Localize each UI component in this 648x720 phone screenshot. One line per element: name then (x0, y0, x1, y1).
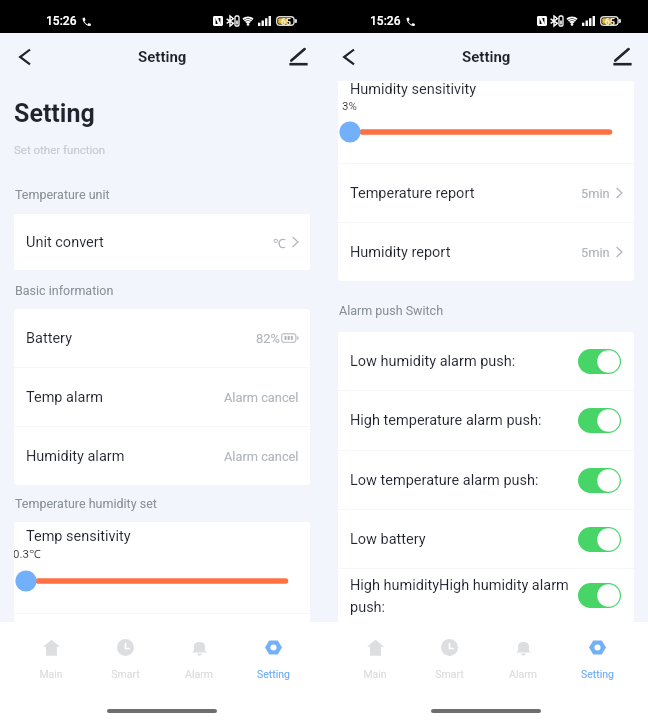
button[interactable]: Toggle (578, 583, 621, 608)
button[interactable]: Back (4, 37, 44, 77)
button[interactable]: Toggle (578, 408, 621, 433)
button[interactable]: Low battery (338, 510, 634, 568)
button[interactable]: Unit convert (14, 214, 310, 270)
staticText: Temp sensitivity (26, 528, 131, 545)
button[interactable]: Toggle (578, 468, 621, 493)
staticText: Low temperature alarm push: (350, 472, 570, 489)
staticText: Alarm (185, 668, 213, 680)
button[interactable]: Alarm (162, 622, 236, 692)
staticText: Smart (111, 668, 140, 680)
button[interactable]: Battery (14, 309, 310, 367)
button[interactable]: Temp alarm (14, 368, 310, 426)
staticText: 3% (342, 99, 357, 112)
staticText: Battery (26, 330, 72, 347)
button[interactable]: Setting (560, 622, 634, 692)
staticText: Setting (581, 668, 614, 680)
staticText: Temperature humidity set (15, 496, 157, 511)
staticText: Temp alarm (26, 389, 104, 406)
staticText: ℃ (273, 234, 286, 251)
staticText: 5min (581, 245, 610, 260)
staticText: Set other function (14, 143, 106, 156)
button[interactable]: Setting (236, 622, 310, 692)
staticText: 15:26 (46, 14, 77, 28)
staticText: 0.3℃ (14, 546, 41, 562)
button[interactable]: High temperature alarm push: (338, 391, 634, 450)
button[interactable]: Edit (278, 37, 318, 77)
staticText: Setting (257, 668, 290, 680)
staticText: Alarm push Switch (339, 303, 444, 318)
button[interactable]: Main (338, 622, 412, 692)
button[interactable]: Edit (602, 37, 642, 77)
button[interactable]: High humidityHigh humidity alarm push: (338, 569, 634, 622)
staticText: 65 (605, 17, 615, 27)
staticText: Humidity sensitivity (350, 81, 477, 98)
staticText: Smart (435, 668, 464, 680)
staticText: Low humidity alarm push: (350, 353, 570, 370)
button[interactable]: Low temperature alarm push: (338, 451, 634, 509)
button[interactable]: Toggle (578, 349, 621, 374)
staticText: High temperature alarm push: (350, 412, 570, 429)
staticText: High humidityHigh humidity alarm push: (350, 577, 570, 615)
staticText: Humidity alarm (26, 448, 125, 465)
staticText: 15:26 (370, 14, 401, 28)
button[interactable]: Toggle (578, 527, 621, 552)
button[interactable]: Humidity alarm (14, 427, 310, 485)
staticText: Alarm cancel (224, 390, 299, 405)
staticText: Main (39, 668, 63, 680)
staticText: Setting (462, 48, 511, 66)
button[interactable]: Back (328, 37, 368, 77)
button[interactable]: Humidity report (338, 223, 634, 281)
staticText: Humidity report (350, 244, 451, 261)
staticText: Setting (138, 48, 187, 66)
button[interactable]: Main (14, 622, 88, 692)
staticText: Basic information (15, 283, 114, 298)
staticText: 65 (281, 17, 291, 27)
staticText: Temperature unit (15, 187, 110, 202)
button[interactable]: Alarm (486, 622, 560, 692)
staticText: 82% (256, 331, 280, 346)
staticText: Temperature report (350, 185, 475, 202)
staticText: 5min (581, 186, 610, 201)
staticText: Main (363, 668, 387, 680)
button[interactable]: Smart (88, 622, 162, 692)
button[interactable]: Temperature report (338, 164, 634, 222)
button[interactable]: Smart (412, 622, 486, 692)
staticText: Setting (14, 99, 95, 128)
staticText: Unit convert (26, 234, 104, 251)
staticText: Alarm (509, 668, 537, 680)
button[interactable]: Low humidity alarm push: (338, 332, 634, 390)
staticText: Alarm cancel (224, 449, 299, 464)
staticText: Low battery (350, 531, 570, 548)
